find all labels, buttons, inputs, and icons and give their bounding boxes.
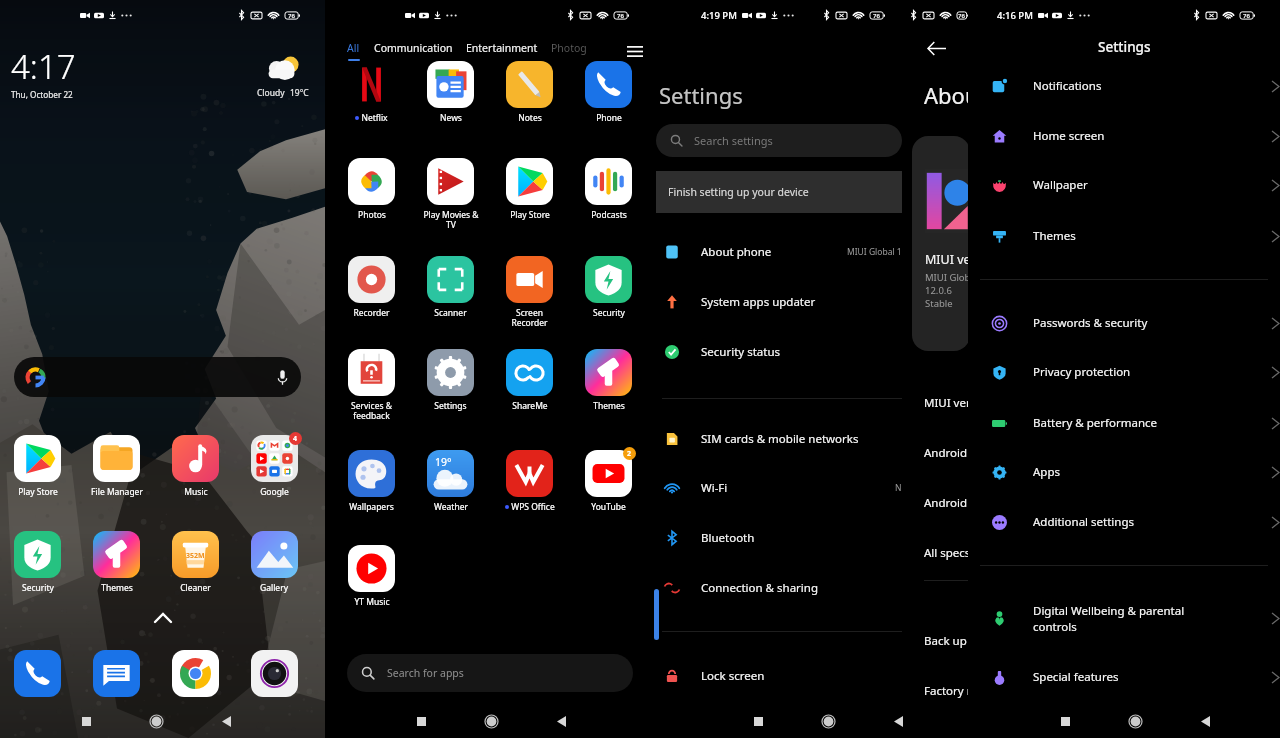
button[interactable]: Phone	[569, 61, 648, 124]
button[interactable]: Additional settings	[968, 497, 1280, 547]
button[interactable]: 2	[569, 450, 648, 513]
button[interactable]: Home screen	[968, 111, 1280, 161]
button[interactable]: Themes	[968, 211, 1280, 261]
button[interactable]: Settings	[411, 349, 490, 412]
button[interactable]: Notes	[490, 61, 569, 124]
button[interactable]	[77, 650, 156, 697]
button[interactable]: All specs	[910, 528, 968, 578]
button[interactable]: File Manager	[77, 435, 156, 498]
button[interactable]: All	[347, 41, 360, 61]
staticText: Phone	[596, 112, 622, 124]
button[interactable]: Netflix	[332, 61, 411, 124]
button[interactable]	[14, 357, 301, 397]
button[interactable]: Gallery	[235, 531, 313, 594]
staticText: MIUI Global 1	[847, 246, 902, 258]
button[interactable]: News	[411, 61, 490, 124]
button[interactable]	[235, 650, 313, 697]
button[interactable]: Security status	[654, 327, 904, 377]
staticText: Search settings	[694, 133, 773, 148]
button[interactable]: Recorder	[332, 256, 411, 319]
button[interactable]	[0, 650, 77, 697]
button[interactable]: Themes	[569, 349, 648, 412]
button[interactable]: Wallpapers	[332, 450, 411, 513]
button[interactable]: Home	[138, 706, 174, 736]
button[interactable]: Recents	[403, 706, 439, 736]
staticText: Security	[22, 582, 54, 594]
button[interactable]: Photos	[332, 158, 411, 221]
button[interactable]: Factory reset	[910, 666, 968, 716]
button[interactable]: Recents	[68, 706, 104, 736]
button[interactable]: Photog	[551, 41, 587, 55]
button[interactable]: Search settings	[656, 124, 902, 157]
staticText: Cleaner	[180, 582, 211, 594]
button[interactable]: Home	[473, 706, 509, 736]
button[interactable]: Home	[810, 706, 846, 736]
button[interactable]: WPS Office	[490, 450, 569, 513]
button[interactable]: Wi-Fi	[654, 463, 904, 513]
staticText: 4	[293, 434, 298, 444]
button[interactable]: Lock screen	[654, 651, 904, 701]
staticText: Services & feedback	[351, 400, 392, 422]
button[interactable]: About phone	[654, 227, 904, 277]
button[interactable]: Play Store	[0, 435, 77, 498]
button[interactable]: ShareMe	[490, 349, 569, 412]
button[interactable]: Communication	[374, 41, 453, 55]
button[interactable]: Scanner	[411, 256, 490, 319]
button[interactable]: Security	[569, 256, 648, 319]
button[interactable]: Finish setting up your device	[656, 171, 902, 213]
staticText: 4:19 PM	[701, 9, 737, 22]
button[interactable]: 19°	[411, 450, 490, 513]
button[interactable]: SIM cards & mobile networks	[654, 414, 904, 464]
button[interactable]: Screen Recorder	[490, 256, 569, 329]
button[interactable]: Recents	[1047, 706, 1083, 736]
button[interactable]: Android security update	[910, 478, 968, 528]
button[interactable]: Connection & sharing	[654, 563, 904, 613]
button[interactable]: Notifications	[968, 61, 1280, 111]
button[interactable]: 352M	[156, 531, 235, 594]
staticText: Photos	[358, 209, 386, 221]
staticText: 2	[627, 449, 632, 459]
button[interactable]: Services & feedback	[332, 349, 411, 422]
staticText: Scanner	[434, 307, 467, 319]
button[interactable]: Play Movies & TV	[411, 158, 490, 231]
button[interactable]: Special features	[968, 652, 1280, 702]
button[interactable]: Privacy protection	[968, 347, 1280, 397]
button[interactable]: Search for apps	[347, 654, 633, 692]
button[interactable]: Recents	[740, 706, 776, 736]
staticText: Themes	[593, 400, 625, 412]
button[interactable]: Themes	[77, 531, 156, 594]
button[interactable]: 4	[235, 435, 313, 498]
staticText: Privacy protection	[1033, 364, 1131, 380]
button[interactable]: Battery & performance	[968, 398, 1280, 448]
button[interactable]: Digital Wellbeing & parental controls	[968, 593, 1280, 643]
button[interactable]: Back up & restore	[910, 616, 968, 666]
button[interactable]: Entertainment	[466, 41, 538, 55]
button[interactable]: Bluetooth	[654, 513, 904, 563]
staticText: Android version	[924, 445, 968, 461]
button[interactable]: Passwords & security	[968, 298, 1280, 348]
button[interactable]: Back	[880, 706, 910, 736]
staticText: Back up & restore	[924, 633, 968, 649]
button[interactable]: MIUI version	[910, 378, 968, 428]
button[interactable]: Home	[1117, 706, 1153, 736]
button[interactable]: Back	[208, 706, 244, 736]
button[interactable]: Back	[1187, 706, 1223, 736]
staticText: All specs	[924, 545, 968, 561]
button[interactable]: Security	[0, 531, 77, 594]
button[interactable]: Podcasts	[569, 158, 648, 221]
button[interactable]: Back	[925, 36, 949, 60]
button[interactable]	[156, 650, 235, 697]
button[interactable]: MIUI version	[912, 136, 968, 351]
staticText: ShareMe	[512, 400, 548, 412]
staticText: Wallpapers	[349, 501, 394, 513]
button[interactable]: Back	[543, 706, 579, 736]
button[interactable]: Apps	[968, 447, 1280, 497]
button[interactable]: Wallpaper	[968, 160, 1280, 210]
button[interactable]: System apps updater	[654, 277, 904, 327]
staticText: Weather	[434, 501, 468, 513]
button[interactable]: Menu	[624, 40, 646, 62]
button[interactable]: Music	[156, 435, 235, 498]
button[interactable]: YT Music	[332, 545, 411, 608]
button[interactable]: Play Store	[490, 158, 569, 221]
button[interactable]: Android version	[910, 428, 968, 478]
